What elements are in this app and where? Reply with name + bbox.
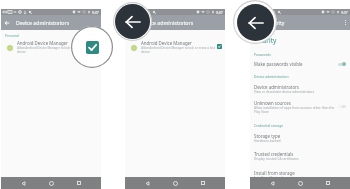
staticText: Make passwords visible: [254, 61, 303, 67]
button[interactable]: Back: [141, 177, 153, 189]
button[interactable]: Navigate up: [1, 15, 16, 30]
button[interactable]: Back: [115, 4, 150, 39]
staticText: Credential storage: [254, 123, 284, 127]
staticText: 9:37: [216, 10, 223, 15]
button[interactable]: Home: [169, 177, 181, 189]
button[interactable]: Android Device Manager: [1, 40, 101, 54]
staticText: View or deactivate device administrators: [254, 90, 315, 94]
staticText: Personal: [129, 33, 143, 37]
button[interactable]: Home: [45, 177, 57, 189]
staticText: Personal: [5, 33, 19, 37]
button[interactable]: Recent apps: [197, 177, 209, 189]
staticText: Allow Android Device Manager to lock or …: [17, 46, 91, 54]
button[interactable]: Recent apps: [322, 177, 334, 189]
staticText: Android Device Manager: [17, 40, 68, 46]
button[interactable]: Navigate up: [250, 15, 265, 30]
button[interactable]: Make passwords visible: [250, 61, 350, 67]
staticText: Security: [252, 36, 277, 45]
button[interactable]: Unknown sources: [250, 100, 350, 114]
button[interactable]: Back: [17, 177, 29, 189]
button[interactable]: Storage type: [250, 133, 350, 144]
staticText: Security: [265, 19, 285, 26]
staticText: Device administrators: [254, 84, 299, 90]
button[interactable]: Trusted credentials: [250, 151, 350, 162]
staticText: Install certificates from storage: [254, 176, 301, 180]
button[interactable]: [217, 44, 222, 49]
staticText: Passwords: [254, 52, 271, 56]
button[interactable]: Navigate up: [125, 15, 140, 30]
button[interactable]: Home: [294, 177, 306, 189]
staticText: Allow installation of apps from sources …: [254, 106, 336, 114]
button[interactable]: More options: [341, 15, 350, 30]
button[interactable]: Back: [237, 4, 274, 41]
staticText: Device administrators: [140, 19, 194, 26]
button[interactable]: Install from storage: [250, 170, 350, 181]
staticText: Display trusted CA certificates: [254, 157, 299, 161]
staticText: 9:37: [92, 10, 99, 15]
staticText: Install from storage: [254, 170, 295, 176]
staticText: Hardware-backed: [254, 139, 281, 143]
button[interactable]: Recent apps: [73, 177, 85, 189]
staticText: Android Device Manager: [141, 40, 192, 46]
staticText: Device administrators: [16, 19, 70, 26]
staticText: 9:37: [341, 10, 348, 15]
button[interactable]: Device administrators: [250, 84, 350, 95]
staticText: Device administration: [254, 74, 289, 78]
staticText: Trusted credentials: [254, 151, 294, 157]
button[interactable]: Android Device Manager: [125, 40, 225, 54]
button[interactable]: Enabled checkbox: [71, 26, 113, 68]
staticText: Allow Android Device Manager to lock or …: [141, 46, 215, 54]
button[interactable]: Back: [266, 177, 278, 189]
staticText: Storage type: [254, 133, 281, 139]
staticText: Unknown sources: [254, 100, 291, 106]
